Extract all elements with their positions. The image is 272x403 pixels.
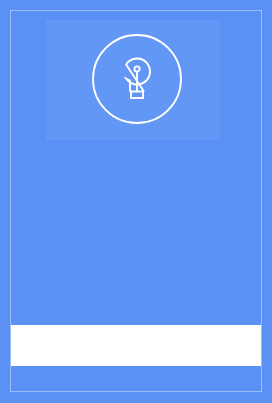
button[interactable]: Lightbulb tip bbox=[0, 0, 272, 403]
button[interactable] bbox=[0, 0, 272, 403]
